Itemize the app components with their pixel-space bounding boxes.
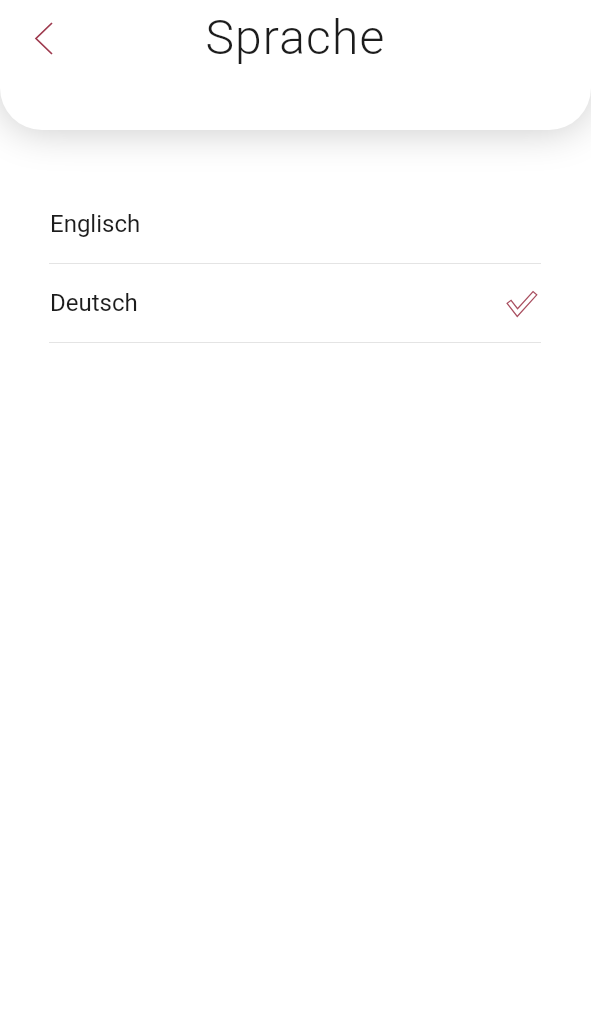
staticText: Sprache bbox=[0, 9, 591, 65]
staticText: Deutsch bbox=[50, 289, 138, 317]
button[interactable]: Back bbox=[14, 8, 74, 68]
button[interactable]: Englisch bbox=[0, 185, 591, 264]
button[interactable]: Deutsch bbox=[0, 264, 591, 343]
staticText: Englisch bbox=[50, 210, 141, 238]
